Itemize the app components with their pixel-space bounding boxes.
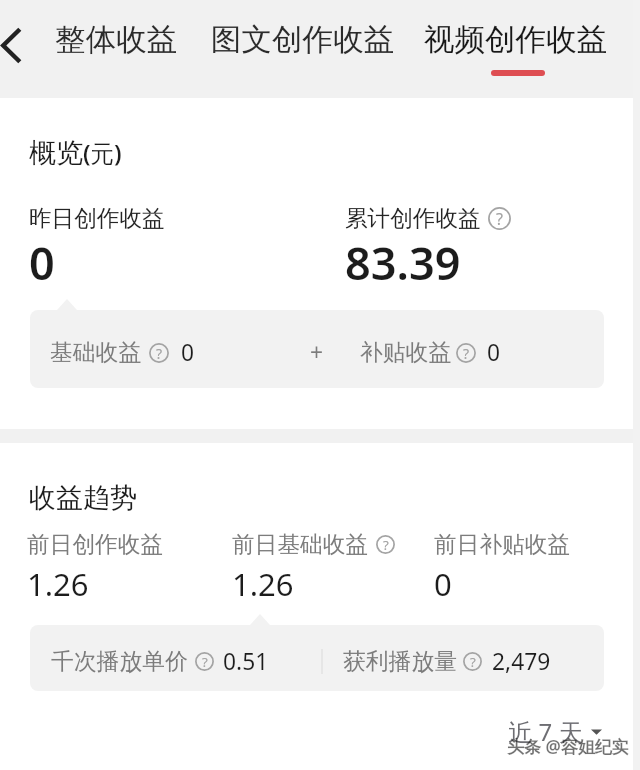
staticText: 整体收益: [55, 21, 177, 59]
staticText: 前日补贴收益: [434, 530, 571, 559]
staticText: 图文创作收益: [211, 21, 394, 59]
staticText: ?: [496, 208, 503, 230]
button[interactable]: 前日创作收益: [27, 530, 164, 605]
button[interactable]: 昨日创作收益: [29, 204, 165, 293]
button[interactable]: 图文创作收益: [211, 17, 394, 63]
button[interactable]: 视频创作收益: [424, 17, 607, 63]
button[interactable]: 前日基础收益: [232, 530, 395, 605]
staticText: 0: [487, 337, 501, 368]
staticText: ?: [470, 653, 476, 671]
staticText: 2,479: [492, 646, 551, 677]
staticText: +: [310, 337, 324, 368]
staticText: 收益趋势: [29, 481, 137, 515]
staticText: 概览: [29, 136, 83, 170]
staticText: 千次播放单价: [51, 647, 188, 676]
staticText: 1.26: [232, 563, 294, 605]
staticText: 头条 @容姐纪实: [507, 735, 629, 758]
staticText: 0: [181, 337, 195, 368]
staticText: 近7天: [508, 715, 590, 748]
staticText: 获利播放量: [343, 647, 457, 676]
staticText: 0.51: [223, 646, 269, 677]
staticText: 83.39: [345, 232, 461, 293]
staticText: 前日创作收益: [27, 530, 164, 559]
staticText: ?: [383, 536, 389, 554]
staticText: 0: [29, 232, 55, 293]
button[interactable]: Back: [0, 0, 44, 90]
staticText: 视频创作收益: [424, 21, 607, 59]
staticText: ?: [202, 653, 208, 671]
staticText: 基础收益: [50, 338, 142, 367]
staticText: ?: [156, 344, 163, 363]
button[interactable]: 累计创作收益: [345, 204, 511, 293]
staticText: 1.26: [27, 563, 89, 605]
staticText: 0: [434, 563, 452, 605]
staticText: (元): [83, 137, 122, 169]
staticText: 昨日创作收益: [29, 204, 165, 232]
staticText: ?: [463, 344, 470, 363]
staticText: 累计创作收益: [345, 204, 481, 232]
staticText: 补贴收益: [360, 338, 452, 367]
staticText: 前日基础收益: [232, 530, 369, 559]
button[interactable]: 近7天: [508, 715, 602, 748]
button[interactable]: 整体收益: [55, 17, 177, 63]
button[interactable]: 前日补贴收益: [434, 530, 571, 605]
button[interactable]: 基础收益: [30, 310, 604, 388]
button[interactable]: 千次播放单价: [30, 625, 604, 691]
